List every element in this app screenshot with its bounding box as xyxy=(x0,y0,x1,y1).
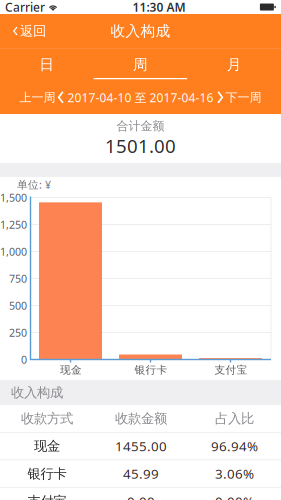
staticText: 现金 xyxy=(60,363,82,377)
staticText: 96.94% xyxy=(211,437,258,455)
button[interactable]: 周 xyxy=(94,48,187,81)
staticText: 2017-04-10 至 2017-04-16 xyxy=(67,89,213,105)
staticText: 占入比 xyxy=(215,410,254,427)
staticText: 3.06% xyxy=(215,465,254,482)
staticText: 上一周 xyxy=(19,90,55,105)
staticText: 1,500 xyxy=(0,190,27,205)
staticText: 750 xyxy=(9,271,27,286)
staticText: 周 xyxy=(133,55,148,73)
staticText: 收入构成 xyxy=(110,22,170,40)
staticText: 合计金额 xyxy=(116,119,164,133)
staticText: 250 xyxy=(9,325,27,340)
staticText: 1455.00 xyxy=(115,437,167,455)
button[interactable]: 月 xyxy=(187,48,281,81)
staticText: 1,000 xyxy=(0,244,27,259)
staticText: 现金 xyxy=(34,438,60,454)
staticText: 0.00% xyxy=(215,492,254,500)
staticText: 500 xyxy=(9,298,27,313)
staticText: 0 xyxy=(21,352,27,367)
staticText: 银行卡 xyxy=(134,363,167,377)
staticText: 返回 xyxy=(20,23,46,39)
button[interactable]: 上一周 xyxy=(18,81,65,114)
button[interactable]: 返回 xyxy=(0,14,56,48)
staticText: 收款金额 xyxy=(115,410,167,427)
button[interactable]: 下一周 xyxy=(215,81,262,114)
staticText: 支付宝 xyxy=(27,493,66,500)
staticText: 收款方式 xyxy=(21,410,73,427)
staticText: 1501.00 xyxy=(105,133,176,158)
staticText: 1,250 xyxy=(0,217,27,232)
button[interactable]: 日 xyxy=(0,48,94,81)
staticText: 银行卡 xyxy=(27,465,66,482)
staticText: 日 xyxy=(39,55,54,73)
staticText: 11:30 AM xyxy=(132,0,185,15)
staticText: 支付宝 xyxy=(214,363,247,377)
staticText: Carrier xyxy=(5,0,45,15)
staticText: 单位: ¥ xyxy=(17,177,51,192)
staticText: 下一周 xyxy=(225,90,261,105)
staticText: 月 xyxy=(227,55,242,73)
staticText: 0.00 xyxy=(127,492,155,500)
staticText: 45.99 xyxy=(123,465,159,482)
staticText: 收入构成 xyxy=(11,384,63,401)
